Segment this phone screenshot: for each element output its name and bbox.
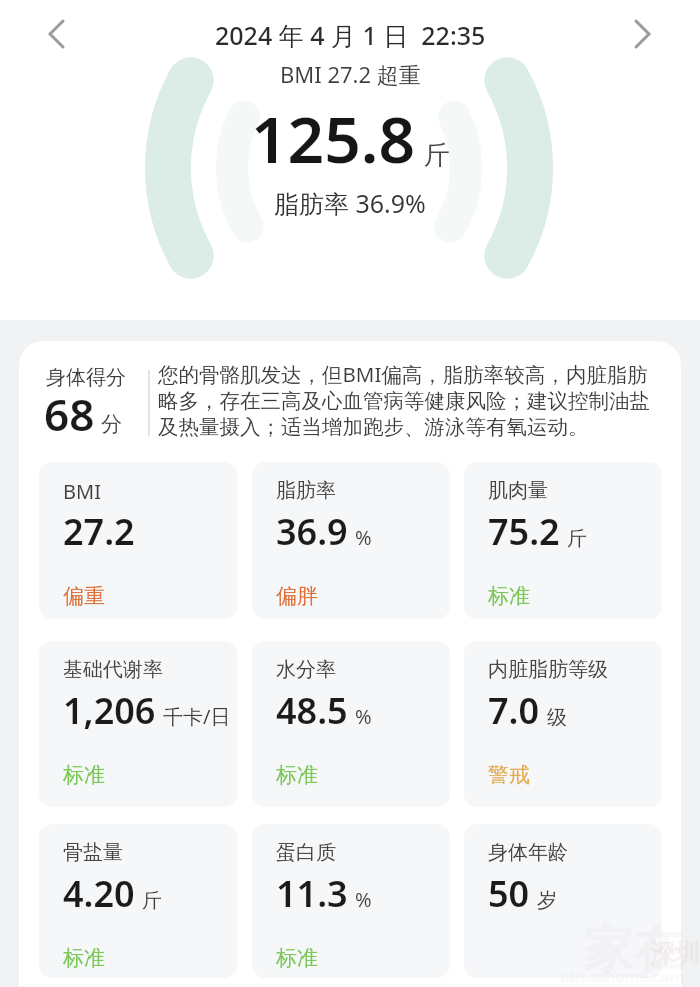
staticText: 27.2 <box>63 507 135 556</box>
staticText: 68 <box>44 384 95 444</box>
staticText: 分 <box>101 411 122 437</box>
staticText: 7.0 <box>488 686 540 735</box>
staticText: 身体年龄 <box>488 840 568 865</box>
button[interactable] <box>626 12 658 56</box>
staticText: 1,206 <box>63 686 156 735</box>
button[interactable]: 水分率 <box>252 641 450 807</box>
staticText: 骨盐量 <box>63 840 123 865</box>
staticText: 标准 <box>276 762 318 788</box>
staticText: 标准 <box>488 583 530 609</box>
staticText: BMI 27.2 超重 <box>280 59 421 89</box>
staticText: % <box>355 524 372 551</box>
staticText: 警戒 <box>488 762 530 788</box>
staticText: 36.9 <box>276 507 348 556</box>
staticText: 蛋白质 <box>276 840 336 865</box>
staticText: 您的骨骼肌发达，但BMI偏高，脂肪率较高，内脏脂肪 <box>158 360 648 388</box>
staticText: BMI <box>63 478 101 505</box>
staticText: 48.5 <box>276 686 348 735</box>
staticText: bbs.szhome.com <box>560 966 685 986</box>
staticText: 及热量摄入；适当增加跑步、游泳等有氧运动。 <box>158 414 589 440</box>
button[interactable] <box>40 12 72 56</box>
staticText: 125.8 <box>251 95 416 182</box>
staticText: 2024 年 4 月 1 日 22:35 <box>215 18 486 52</box>
staticText: 水分率 <box>276 657 336 682</box>
staticText: 斤 <box>567 526 587 551</box>
staticText: % <box>355 886 372 913</box>
staticText: 偏胖 <box>276 583 318 609</box>
staticText: 级 <box>547 705 567 730</box>
button[interactable]: 蛋白质 <box>252 824 450 978</box>
button[interactable]: BMI <box>39 462 237 619</box>
staticText: 基础代谢率 <box>63 657 163 682</box>
staticText: 千卡/日 <box>163 703 231 730</box>
staticText: 标准 <box>63 762 105 788</box>
staticText: 深圳 <box>650 938 700 969</box>
staticText: 岁 <box>537 888 557 913</box>
button[interactable]: 身体年龄 <box>464 824 662 978</box>
staticText: 标准 <box>276 945 318 971</box>
staticText: 肌肉量 <box>488 478 548 503</box>
staticText: 11.3 <box>276 869 348 918</box>
button[interactable]: 脂肪率 <box>252 462 450 619</box>
staticText: 偏重 <box>63 583 105 609</box>
staticText: 50 <box>488 869 530 918</box>
staticText: 75.2 <box>488 507 560 556</box>
staticText: 标准 <box>63 945 105 971</box>
button[interactable]: 基础代谢率 <box>39 641 237 807</box>
staticText: 家在 <box>583 918 683 981</box>
staticText: 内脏脂肪等级 <box>488 657 608 682</box>
button[interactable]: 内脏脂肪等级 <box>464 641 662 807</box>
staticText: 斤 <box>424 139 450 172</box>
button[interactable]: 骨盐量 <box>39 824 237 978</box>
staticText: 斤 <box>142 888 162 913</box>
staticText: 身体得分 <box>46 365 126 390</box>
staticText: 脂肪率 <box>276 478 336 503</box>
staticText: 略多，存在三高及心血管病等健康风险；建议控制油盐 <box>158 388 650 414</box>
staticText: 脂肪率 36.9% <box>274 186 426 220</box>
staticText: 4.20 <box>63 869 135 918</box>
button[interactable]: 肌肉量 <box>464 462 662 619</box>
staticText: % <box>355 703 372 730</box>
